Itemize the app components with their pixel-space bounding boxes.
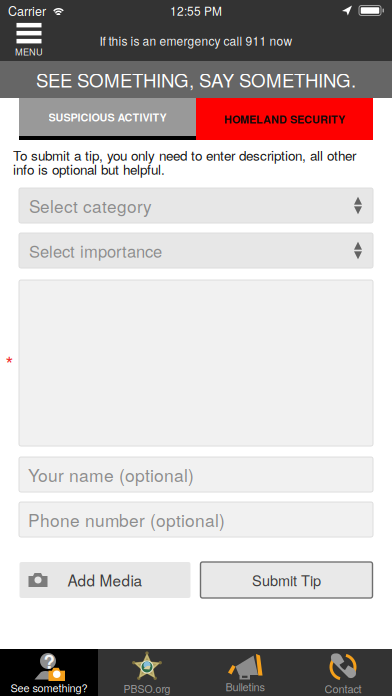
staticText: If this is an emergency call 911 now	[99, 32, 292, 49]
staticText: SEE SOMETHING, SAY SOMETHING.	[36, 66, 356, 93]
staticText: info is optional but helpful.	[13, 159, 165, 179]
staticText: Phone number (optional)	[28, 507, 225, 532]
button[interactable]: PBSO.org	[98, 649, 196, 696]
button[interactable]: Submit Tip	[200, 562, 372, 598]
staticText: Your name (optional)	[28, 462, 194, 487]
staticText: HOMELAND SECURITY	[224, 111, 345, 127]
button[interactable]: Contact	[294, 649, 392, 696]
staticText: PBSO.org	[123, 681, 170, 696]
button[interactable]: SUSPICIOUS ACTIVITY	[19, 98, 196, 140]
staticText: See something?	[10, 680, 87, 695]
button[interactable]: Add Media	[19, 562, 190, 598]
staticText: To submit a tip, you only need to enter …	[13, 145, 356, 165]
staticText: Submit Tip	[252, 570, 321, 590]
button[interactable]: ?	[0, 649, 98, 696]
button[interactable]: Bulletins	[196, 649, 294, 696]
staticText: Select importance	[29, 239, 162, 262]
button[interactable]: Phone number (optional)	[19, 502, 373, 537]
staticText: Add Media	[67, 569, 142, 591]
staticText: Bulletins	[225, 679, 264, 694]
button[interactable]: Select importance	[19, 233, 373, 268]
staticText: ?	[43, 648, 54, 674]
button[interactable]: HOMELAND SECURITY	[196, 98, 373, 140]
staticText: Contact	[324, 681, 361, 696]
staticText: Select category	[29, 193, 152, 218]
button[interactable]: Menu	[0, 20, 58, 60]
staticText: MENU	[15, 45, 43, 58]
staticText: 12:55 PM	[170, 2, 222, 19]
button[interactable]: Select category	[19, 188, 373, 223]
staticText: Carrier	[8, 1, 46, 19]
staticText: *	[5, 349, 13, 377]
staticText: SUSPICIOUS ACTIVITY	[48, 109, 166, 125]
button[interactable]: Your name (optional)	[19, 457, 373, 492]
